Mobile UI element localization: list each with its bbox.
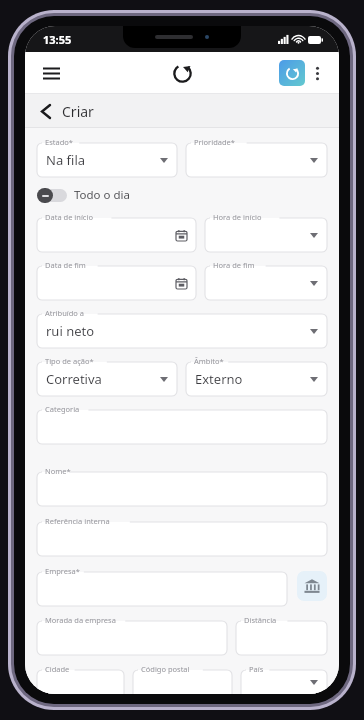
button[interactable]: Logo <box>165 56 199 90</box>
button[interactable]: Referência interna <box>37 516 327 556</box>
staticText: Externo <box>195 370 243 388</box>
staticText: Data de fim <box>45 260 86 270</box>
button[interactable]: Distância <box>236 615 327 655</box>
staticText: Distância <box>244 615 277 625</box>
staticText: Hora de início <box>213 212 262 222</box>
button[interactable]: País <box>241 664 327 694</box>
button[interactable]: Refresh <box>279 60 305 86</box>
staticText: Na fila <box>46 151 86 169</box>
staticText: Prioridade* <box>194 137 235 147</box>
staticText: Data de início <box>45 212 93 222</box>
staticText: País <box>249 664 264 674</box>
staticText: Âmbito* <box>194 356 224 366</box>
button[interactable]: Tipo de ação* <box>37 356 177 396</box>
button[interactable]: Estado* <box>37 137 177 177</box>
staticText: Referência interna <box>45 516 110 526</box>
button[interactable]: Nome* <box>37 466 327 506</box>
staticText: Nome* <box>45 466 71 476</box>
staticText: Criar <box>62 102 94 121</box>
button[interactable]: Categoria <box>37 404 327 444</box>
button[interactable]: Âmbito* <box>186 356 327 396</box>
button[interactable]: Código postal <box>133 664 232 694</box>
staticText: Tipo de ação* <box>45 356 94 366</box>
staticText: Cidade <box>45 664 70 674</box>
button[interactable]: Selecionar empresa <box>297 571 327 601</box>
staticText: Estado* <box>45 137 73 147</box>
button[interactable]: Data de fim <box>37 260 196 300</box>
staticText: Empresa* <box>45 566 80 576</box>
staticText: Corretiva <box>46 370 102 388</box>
button[interactable]: Hora de início <box>205 212 327 252</box>
staticText: Todo o dia <box>74 187 131 203</box>
staticText: Hora de fim <box>213 260 255 270</box>
staticText: Código postal <box>141 664 190 674</box>
staticText: Morada da empresa <box>45 615 116 625</box>
button[interactable]: Prioridade* <box>186 137 327 177</box>
staticText: Categoria <box>45 404 80 414</box>
button[interactable]: Empresa* <box>37 566 287 606</box>
button[interactable]: Morada da empresa <box>37 615 227 655</box>
button[interactable]: Data de início <box>37 212 196 252</box>
staticText: rui neto <box>46 322 95 340</box>
button[interactable]: Atribuído a <box>37 308 327 348</box>
button[interactable]: Cidade <box>37 664 124 694</box>
button[interactable]: Criar <box>33 98 94 124</box>
button[interactable]: More options <box>305 61 329 85</box>
button[interactable]: Hora de fim <box>205 260 327 300</box>
staticText: 13:55 <box>43 32 72 47</box>
staticText: Atribuído a <box>45 308 85 318</box>
button[interactable]: Todo o dia <box>37 187 131 203</box>
button[interactable]: Menu <box>33 55 69 91</box>
